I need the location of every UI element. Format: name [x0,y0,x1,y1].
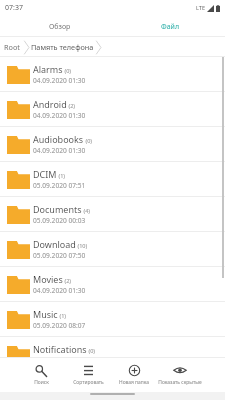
staticText: Notifications [33,343,87,355]
staticText: 05.09.2020 07:51 [33,181,86,190]
staticText: 04.09.2020 01:30 [33,286,86,295]
button[interactable]: Новая папка [111,357,157,392]
staticText: (0) [63,67,72,75]
staticText: Сортировать [73,379,104,386]
staticText: 04.09.2020 01:30 [33,76,86,85]
button[interactable]: Alarms [0,57,225,92]
staticText: Android [33,98,67,110]
staticText: (10) [76,242,88,250]
other: Показать скрытые [173,365,187,378]
staticText: 04.09.2020 01:30 [33,146,86,155]
staticText: Показать скрытые [158,379,202,386]
staticText: (4) [82,207,91,215]
staticText: 05.09.2020 08:07 [33,321,86,330]
staticText: Поиск [34,379,49,386]
button[interactable]: Root [2,39,23,55]
staticText: (0) [84,137,93,145]
button[interactable]: Download [0,232,225,267]
button[interactable]: Android [0,92,225,127]
button[interactable]: Audiobooks [0,127,225,162]
other: Поиск [35,365,48,378]
button[interactable]: Movies [0,267,225,302]
staticText: Память телефона [31,42,94,52]
staticText: Новая папка [119,379,149,386]
button[interactable]: Файл [115,16,225,37]
staticText: Обзор [49,22,71,32]
staticText: Download [33,238,76,250]
staticText: 05.09.2020 00:03 [33,216,86,225]
staticText: (2) [63,277,72,285]
staticText: (1) [57,172,66,180]
button[interactable]: Сортировать [65,357,111,392]
staticText: Файл [161,22,180,32]
button[interactable]: Notifications [0,337,225,357]
staticText: 04.09.2020 01:30 [33,111,86,120]
staticText: Audiobooks [33,133,84,145]
button[interactable]: Поиск [18,357,65,392]
staticText: Documents [33,203,82,215]
staticText: Alarms [33,63,63,75]
button[interactable]: Показать скрытые [157,357,203,392]
button[interactable]: Documents [0,197,225,232]
staticText: (1) [58,312,67,320]
other: Сортировать [82,365,95,378]
staticText: LTE [196,4,206,12]
staticText: DCIM [33,168,57,180]
button[interactable]: Память телефона [30,39,95,55]
button[interactable]: Music [0,302,225,337]
staticText: Movies [33,273,63,285]
other: Новая папка [128,365,141,378]
staticText: (2) [67,102,76,110]
staticText: Music [33,308,58,320]
button[interactable]: DCIM [0,162,225,197]
staticText: 05.09.2020 07:50 [33,251,86,260]
staticText: 07:37 [5,3,23,13]
staticText: (0) [87,347,96,355]
button[interactable]: Обзор [5,16,115,37]
staticText: Root [4,42,21,52]
